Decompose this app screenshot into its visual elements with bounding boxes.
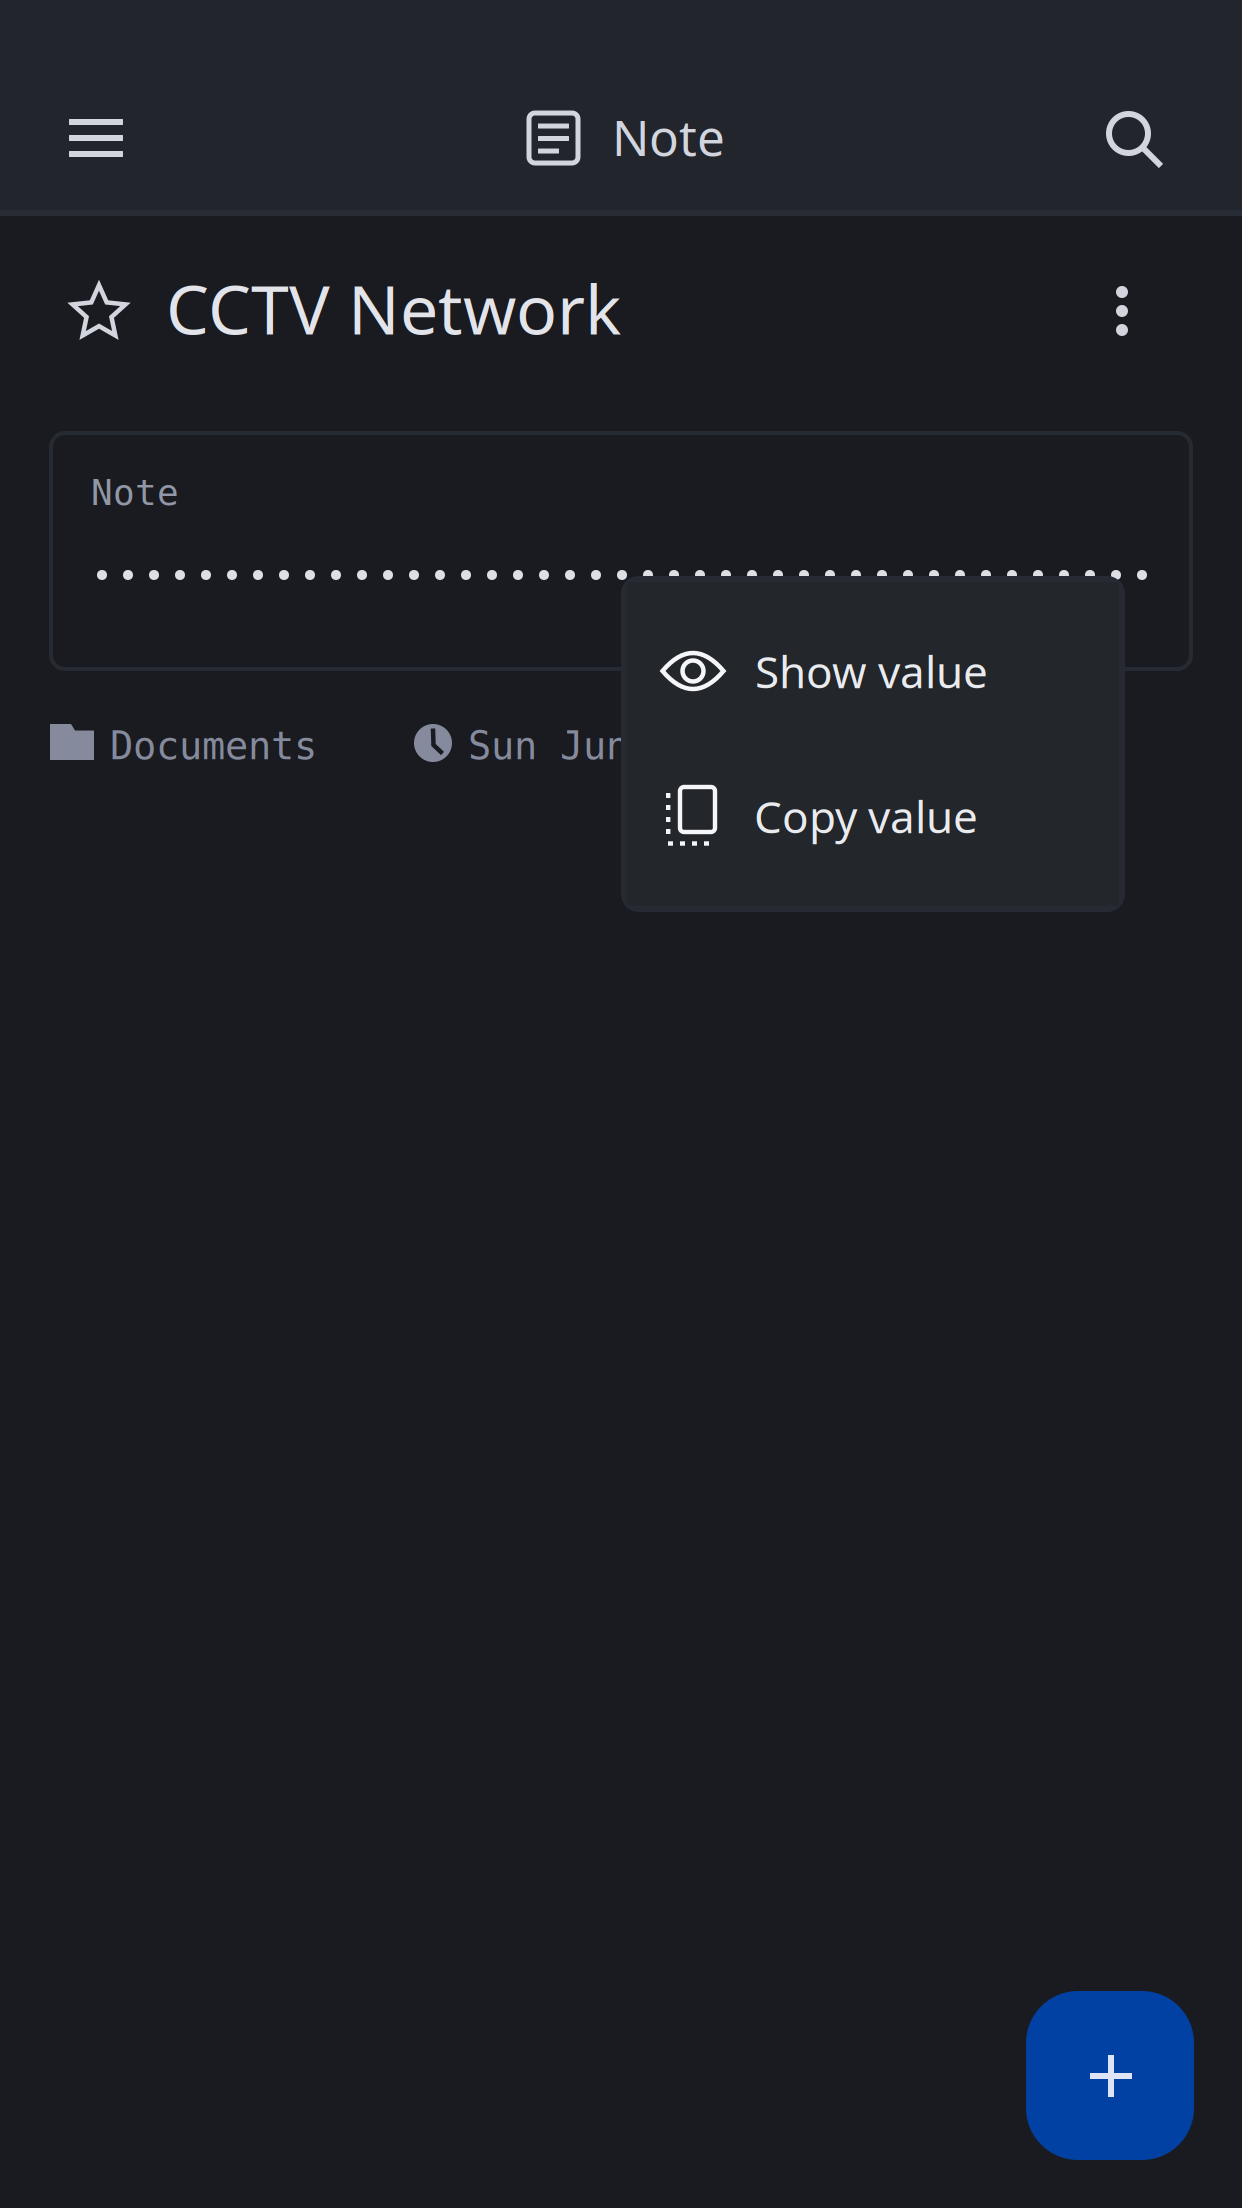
button[interactable]: Menu xyxy=(40,68,154,208)
staticText: Sun Jun xyxy=(468,724,629,768)
button[interactable]: Show value xyxy=(621,576,1113,738)
button[interactable]: Copy value xyxy=(621,576,1113,738)
staticText: Documents xyxy=(110,724,317,768)
button[interactable]: Favourite xyxy=(43,257,151,365)
staticText: Copy value xyxy=(754,787,978,845)
staticText: Note xyxy=(612,104,725,169)
staticText: CCTV Network xyxy=(166,263,621,353)
button[interactable]: Search xyxy=(1077,68,1191,208)
button[interactable]: More options xyxy=(1074,257,1170,365)
button[interactable]: Add xyxy=(1026,1991,1194,2160)
staticText: Note xyxy=(91,472,179,513)
staticText: Show value xyxy=(755,642,988,700)
